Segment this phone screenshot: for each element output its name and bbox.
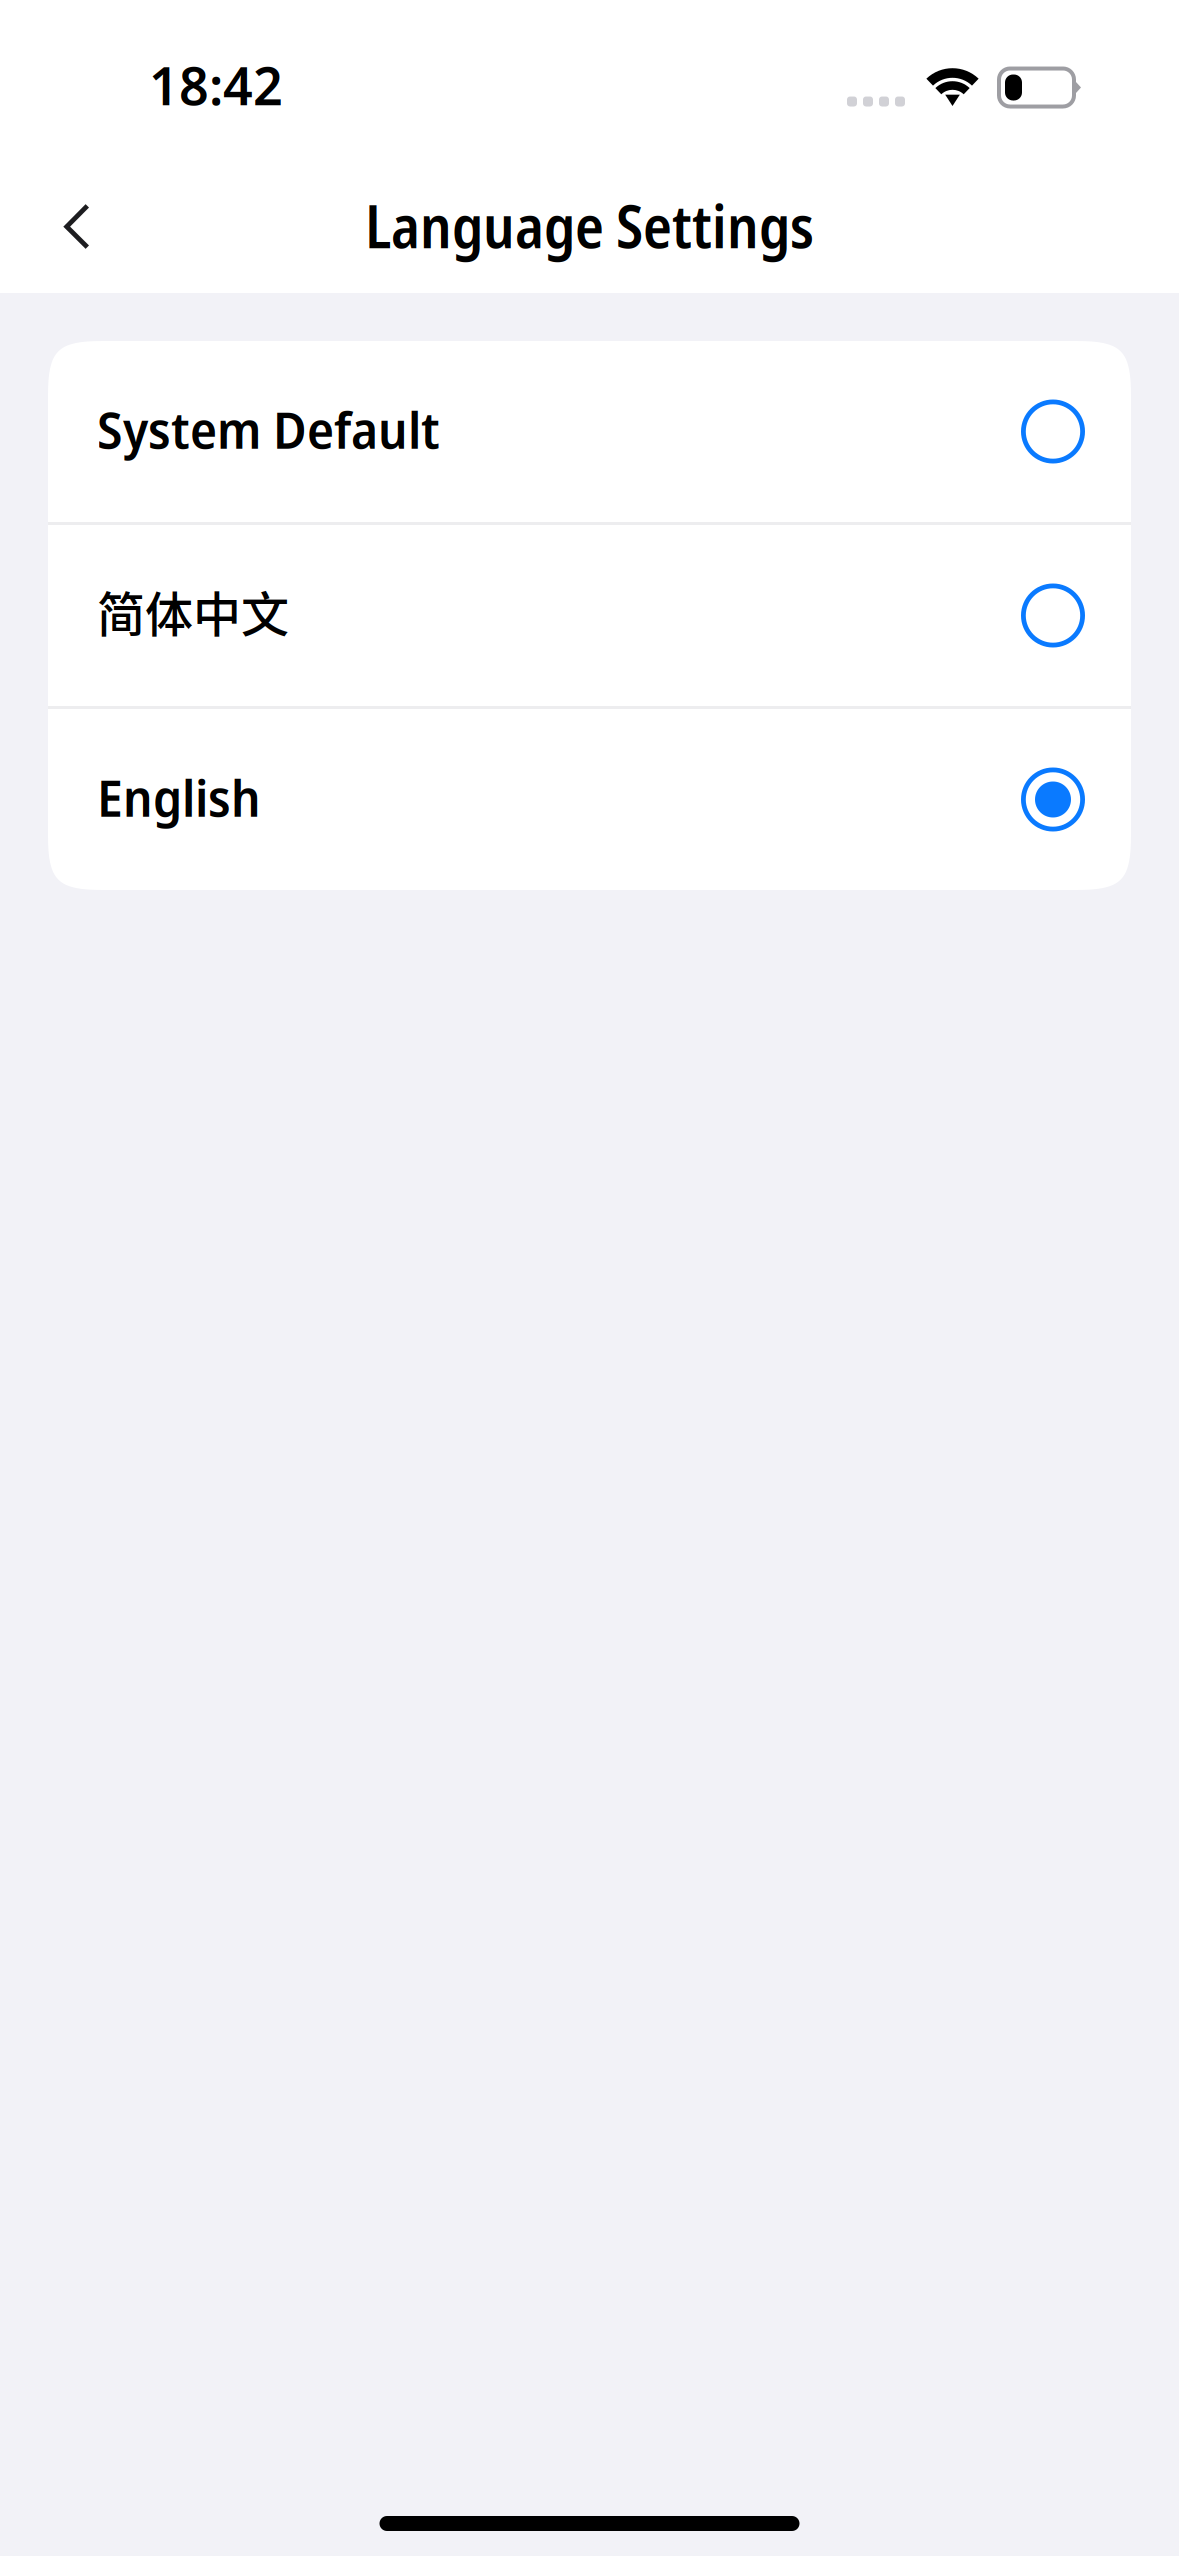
staticText: 简体中文 bbox=[97, 576, 289, 646]
staticText: English bbox=[97, 762, 261, 831]
button[interactable]: Back bbox=[29, 178, 125, 274]
button[interactable]: 简体中文 bbox=[48, 525, 1131, 706]
staticText: System Default bbox=[97, 394, 440, 463]
staticText: 18:42 bbox=[149, 50, 283, 120]
staticText: Language Settings bbox=[365, 185, 814, 265]
button[interactable]: System Default bbox=[48, 341, 1131, 522]
button[interactable]: English bbox=[48, 709, 1131, 890]
